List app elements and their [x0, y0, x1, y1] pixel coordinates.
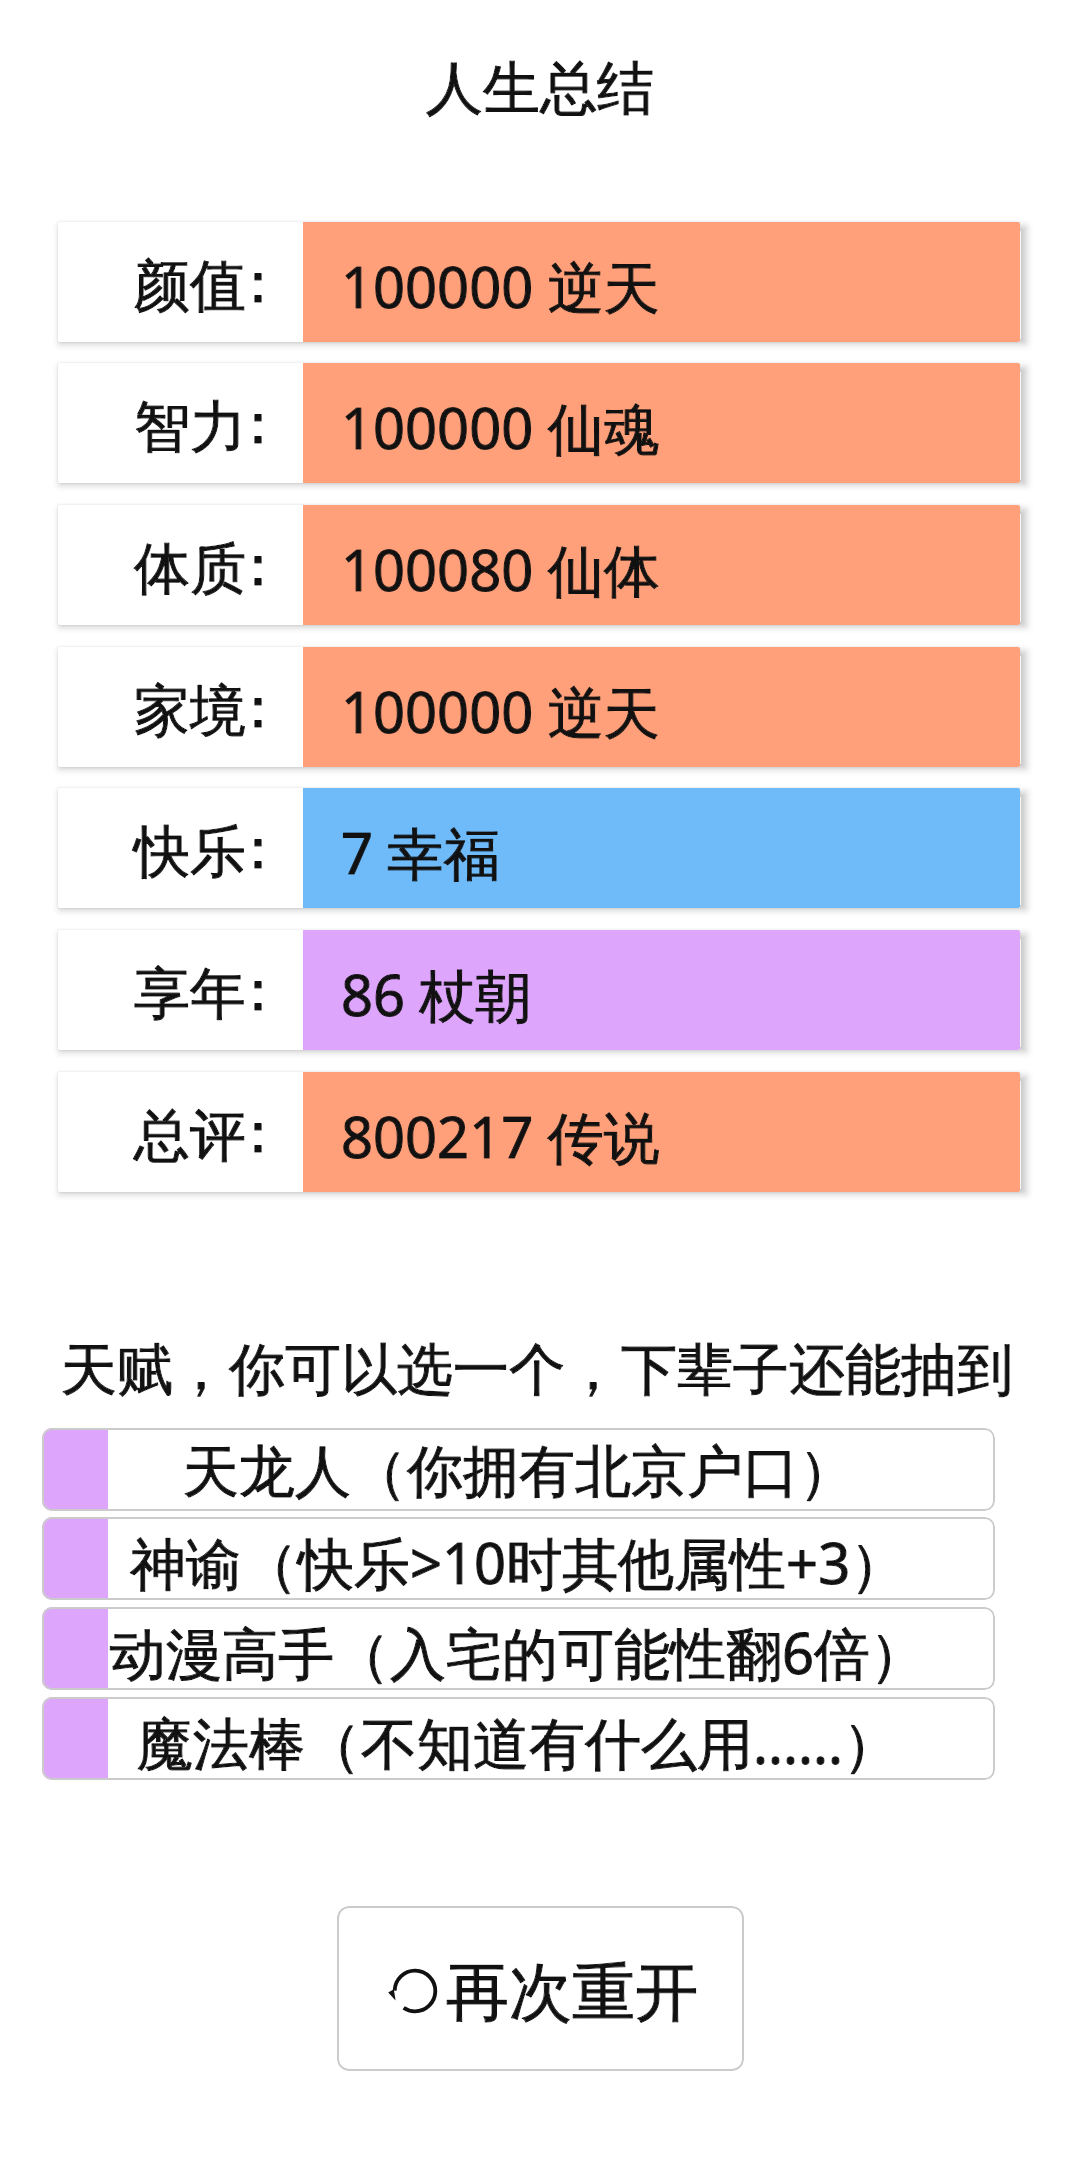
- staticText: 100080 仙体: [341, 531, 660, 607]
- staticText: 快乐: [134, 817, 246, 888]
- staticText: ：: [230, 814, 286, 885]
- staticText: 享年: [134, 959, 246, 1030]
- staticText: 再次重开: [446, 1953, 698, 2032]
- button[interactable]: 魔法棒（不知道有什么用......）: [42, 1697, 995, 1780]
- staticText: 智力: [134, 392, 246, 463]
- staticText: ：: [230, 531, 286, 602]
- staticText: 天龙人（你拥有北京户口）: [183, 1437, 855, 1508]
- staticText: ：: [230, 956, 286, 1027]
- staticText: 7 幸福: [341, 814, 500, 890]
- staticText: 100080 仙体: [341, 531, 660, 607]
- staticText: ：: [230, 673, 286, 744]
- staticText: 动漫高手（入宅的可能性翻6倍）: [110, 1614, 927, 1690]
- staticText: 人生总结: [426, 53, 654, 125]
- staticText: 体质: [134, 534, 246, 605]
- staticText: 7 幸福: [341, 814, 500, 890]
- button[interactable]: 神谕（快乐>10时其他属性+3）: [42, 1517, 995, 1600]
- staticText: 神谕（快乐>10时其他属性+3）: [130, 1524, 907, 1600]
- staticText: ：: [230, 531, 286, 602]
- button[interactable]: 颜值: [58, 222, 1020, 342]
- staticText: ：: [230, 389, 286, 460]
- staticText: 100000 仙魂: [341, 389, 660, 465]
- button[interactable]: 智力: [58, 363, 1020, 483]
- staticText: ：: [230, 1098, 286, 1169]
- staticText: 享年: [134, 959, 246, 1030]
- staticText: 800217 传说: [341, 1098, 660, 1174]
- staticText: 颜值: [134, 251, 246, 322]
- staticText: 天龙人（你拥有北京户口）: [183, 1437, 855, 1508]
- staticText: 神谕（快乐>10时其他属性+3）: [130, 1524, 907, 1600]
- button[interactable]: 天龙人（你拥有北京户口）: [42, 1428, 995, 1511]
- staticText: 86 杖朝: [341, 956, 532, 1032]
- staticText: ：: [230, 1098, 286, 1169]
- staticText: 100000 逆天: [341, 673, 660, 749]
- staticText: 魔法棒（不知道有什么用......）: [137, 1704, 900, 1780]
- staticText: 100000 逆天: [341, 673, 660, 749]
- staticText: 100000 逆天: [341, 248, 660, 324]
- staticText: 再次重开: [446, 1953, 698, 2032]
- button[interactable]: 总评: [58, 1072, 1020, 1192]
- button[interactable]: 体质: [58, 505, 1020, 625]
- staticText: 800217 传说: [341, 1098, 660, 1174]
- staticText: ：: [230, 248, 286, 319]
- other: 重开: [387, 1963, 443, 2019]
- staticText: 86 杖朝: [341, 956, 532, 1032]
- staticText: 体质: [134, 534, 246, 605]
- staticText: ：: [230, 673, 286, 744]
- staticText: 智力: [134, 392, 246, 463]
- staticText: 动漫高手（入宅的可能性翻6倍）: [110, 1614, 927, 1690]
- button[interactable]: 享年: [58, 930, 1020, 1050]
- staticText: 100000 逆天: [341, 248, 660, 324]
- staticText: 总评: [134, 1101, 246, 1172]
- button[interactable]: 家境: [58, 647, 1020, 767]
- staticText: 魔法棒（不知道有什么用......）: [137, 1704, 900, 1780]
- staticText: 家境: [134, 676, 246, 747]
- staticText: 快乐: [134, 817, 246, 888]
- button[interactable]: 动漫高手（入宅的可能性翻6倍）: [42, 1607, 995, 1690]
- staticText: 人生总结: [426, 53, 654, 125]
- staticText: ：: [230, 814, 286, 885]
- staticText: 总评: [134, 1101, 246, 1172]
- staticText: 天赋，你可以选一个，下辈子还能抽到: [61, 1335, 1013, 1406]
- button[interactable]: 重开: [337, 1906, 744, 2071]
- staticText: 100000 仙魂: [341, 389, 660, 465]
- staticText: ：: [230, 248, 286, 319]
- staticText: ：: [230, 956, 286, 1027]
- staticText: 天赋，你可以选一个，下辈子还能抽到: [61, 1335, 1013, 1406]
- staticText: 家境: [134, 676, 246, 747]
- button[interactable]: 快乐: [58, 788, 1020, 908]
- staticText: 颜值: [134, 251, 246, 322]
- staticText: ：: [230, 389, 286, 460]
